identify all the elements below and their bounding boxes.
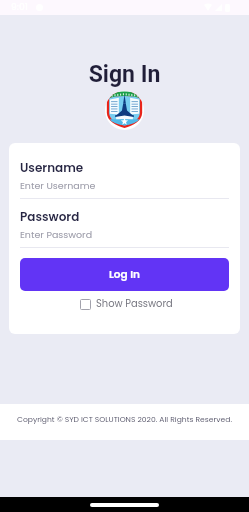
staticText: Enter Password <box>20 228 93 241</box>
staticText: Log In <box>109 267 140 282</box>
other: Wi-Fi <box>204 4 212 11</box>
staticText: Password <box>20 208 80 225</box>
staticText: Username <box>20 159 84 176</box>
staticText: Sign In <box>0 61 249 88</box>
button[interactable]: Show Password <box>80 297 173 311</box>
staticText: Enter Username <box>20 179 96 192</box>
staticText: Show Password <box>96 297 173 311</box>
staticText: Copyright © SYD ICT SOLUTIONS 2020. All … <box>0 414 249 425</box>
button[interactable]: Log In <box>20 258 229 291</box>
other: Mobile signal <box>214 4 222 11</box>
